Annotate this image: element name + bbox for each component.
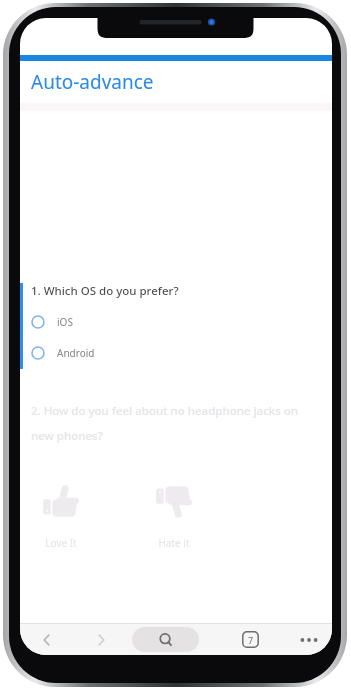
button[interactable]: More options xyxy=(286,624,332,655)
staticText: iOS xyxy=(57,315,73,329)
button[interactable]: Auto-advance xyxy=(20,61,332,103)
staticText: Android xyxy=(57,346,95,360)
button[interactable]: Love It xyxy=(31,484,91,550)
button[interactable]: iOS xyxy=(31,315,332,329)
button[interactable]: Forward xyxy=(74,624,128,655)
staticText: 2. How do you feel about no headphone ja… xyxy=(31,403,299,419)
staticText: 7 xyxy=(248,634,254,646)
button[interactable]: Android xyxy=(31,346,332,360)
button[interactable]: Tabs, 7 open xyxy=(232,624,268,655)
staticText: Love It xyxy=(45,536,77,550)
staticText: Hate it xyxy=(158,536,190,550)
staticText: new phones? xyxy=(31,428,103,444)
button[interactable]: Search xyxy=(132,627,199,652)
staticText: Auto-advance xyxy=(31,69,154,95)
button[interactable]: Back xyxy=(20,624,74,655)
button[interactable]: Hate it xyxy=(144,484,204,550)
staticText: 1. Which OS do you prefer? xyxy=(31,283,179,299)
